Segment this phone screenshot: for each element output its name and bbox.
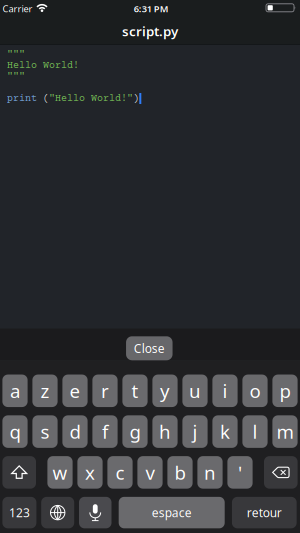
staticText: n <box>204 460 216 485</box>
button[interactable]: Dictate <box>79 497 111 528</box>
staticText: z <box>40 378 49 403</box>
staticText: """ <box>7 49 25 60</box>
staticText: s <box>40 419 49 444</box>
staticText: "Hello World!" <box>49 93 133 104</box>
staticText: c <box>115 460 124 485</box>
staticText: o <box>249 378 260 403</box>
button[interactable]: s <box>32 415 58 448</box>
button[interactable]: b <box>167 456 193 489</box>
staticText: d <box>69 419 80 444</box>
staticText: e <box>69 378 80 403</box>
staticText: y <box>160 378 170 403</box>
staticText: script.py <box>122 22 178 40</box>
staticText: l <box>252 419 257 444</box>
staticText: q <box>9 419 20 444</box>
button[interactable]: retour <box>232 497 297 528</box>
button[interactable]: Close <box>126 336 173 360</box>
button[interactable]: espace <box>119 497 225 528</box>
button[interactable]: v <box>137 456 163 489</box>
button[interactable]: 123 <box>2 497 36 528</box>
staticText: r <box>101 378 109 403</box>
button[interactable]: Next keyboard <box>41 497 74 528</box>
staticText: b <box>174 460 185 485</box>
staticText: 123 <box>9 505 30 520</box>
staticText: 6:31 PM <box>134 2 169 15</box>
staticText: ' <box>238 460 242 485</box>
staticText: w <box>52 460 67 485</box>
staticText: x <box>85 460 95 485</box>
staticText: Hello World! <box>7 60 79 71</box>
staticText: ) <box>133 93 139 104</box>
staticText: v <box>145 460 154 485</box>
staticText: t <box>131 378 138 403</box>
staticText: h <box>159 419 171 444</box>
button[interactable]: p <box>272 375 298 407</box>
staticText: k <box>220 419 230 444</box>
button[interactable]: d <box>62 415 88 448</box>
button[interactable]: Shift <box>2 456 36 489</box>
staticText: Carrier <box>2 2 32 15</box>
button[interactable]: r <box>92 375 118 407</box>
button[interactable]: h <box>152 415 178 448</box>
button[interactable]: z <box>32 375 58 407</box>
button[interactable]: n <box>197 456 223 489</box>
staticText: p <box>279 378 290 403</box>
button[interactable]: t <box>122 375 148 407</box>
staticText: j <box>192 419 197 444</box>
button[interactable]: w <box>47 456 73 489</box>
button[interactable]: l <box>242 415 268 448</box>
staticText: m <box>276 419 293 444</box>
button[interactable]: o <box>242 375 268 407</box>
button[interactable]: m <box>272 415 298 448</box>
button[interactable]: y <box>152 375 178 407</box>
button[interactable]: i <box>212 375 238 407</box>
staticText: print <box>7 93 37 104</box>
button[interactable]: j <box>182 415 208 448</box>
staticText: ( <box>37 93 49 104</box>
button[interactable]: u <box>182 375 208 407</box>
button[interactable]: e <box>62 375 88 407</box>
staticText: espace <box>152 505 192 520</box>
button[interactable]: q <box>2 415 28 448</box>
button[interactable]: x <box>77 456 103 489</box>
staticText: g <box>129 419 140 444</box>
button[interactable]: k <box>212 415 238 448</box>
staticText: """ <box>7 71 25 82</box>
staticText: Close <box>134 340 165 356</box>
button[interactable]: g <box>122 415 148 448</box>
staticText: i <box>222 378 227 403</box>
staticText: retour <box>247 505 282 520</box>
button[interactable]: Delete <box>264 456 298 489</box>
button[interactable]: f <box>92 415 118 448</box>
staticText: a <box>10 378 20 403</box>
button[interactable]: ' <box>227 456 253 489</box>
staticText: u <box>189 378 201 403</box>
button[interactable]: c <box>107 456 133 489</box>
staticText: f <box>102 419 108 444</box>
button[interactable]: a <box>2 375 28 407</box>
